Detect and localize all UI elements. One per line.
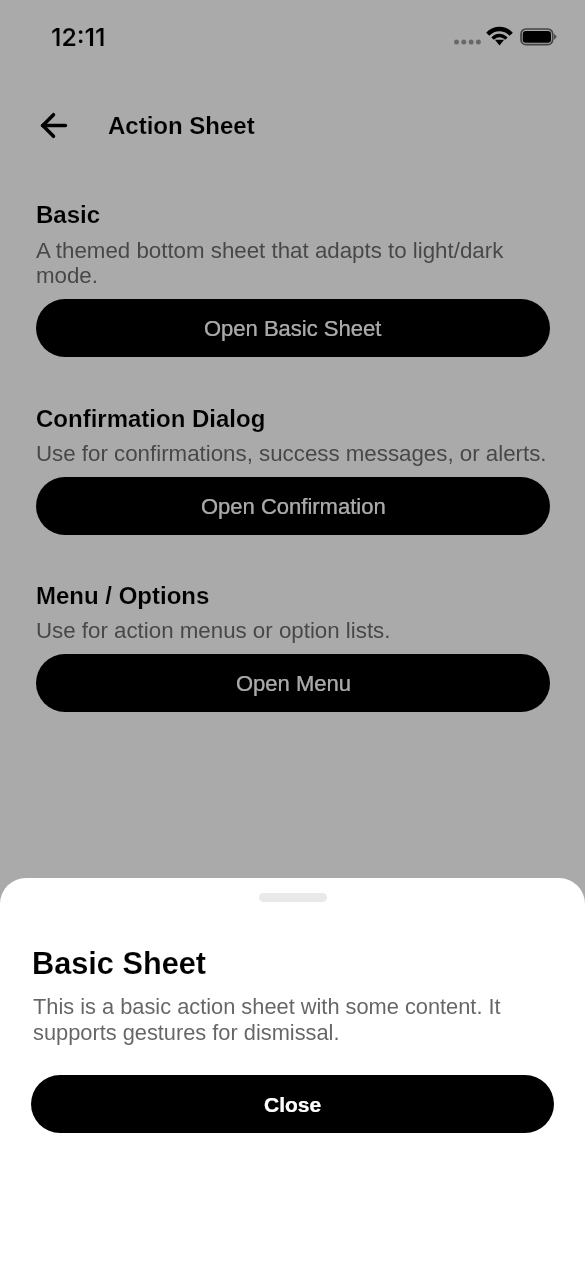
staticText: This is a basic action sheet with some c… — [33, 993, 550, 1045]
staticText: Use for confirmations, success messages,… — [36, 441, 550, 466]
staticText: 12:11 — [51, 22, 106, 52]
button[interactable]: Open Menu — [36, 654, 550, 712]
staticText: Action Sheet — [108, 112, 255, 139]
staticText: Basic Sheet — [32, 946, 206, 980]
button[interactable] — [0, 0, 585, 1266]
staticText: Confirmation Dialog — [36, 405, 266, 432]
staticText: Basic — [36, 201, 101, 228]
staticText: Close — [264, 1093, 322, 1116]
staticText: A themed bottom sheet that adapts to lig… — [36, 238, 550, 288]
staticText: Open Menu — [236, 671, 351, 696]
button[interactable]: Open Basic Sheet — [36, 299, 550, 357]
button[interactable]: Close — [31, 1075, 554, 1133]
staticText: Menu / Options — [36, 582, 210, 609]
button[interactable]: Open Confirmation — [36, 477, 550, 535]
staticText: Open Confirmation — [201, 494, 386, 519]
staticText: Use for action menus or option lists. — [36, 618, 550, 643]
staticText: Open Basic Sheet — [204, 316, 382, 341]
button[interactable]: Back — [27, 99, 81, 153]
